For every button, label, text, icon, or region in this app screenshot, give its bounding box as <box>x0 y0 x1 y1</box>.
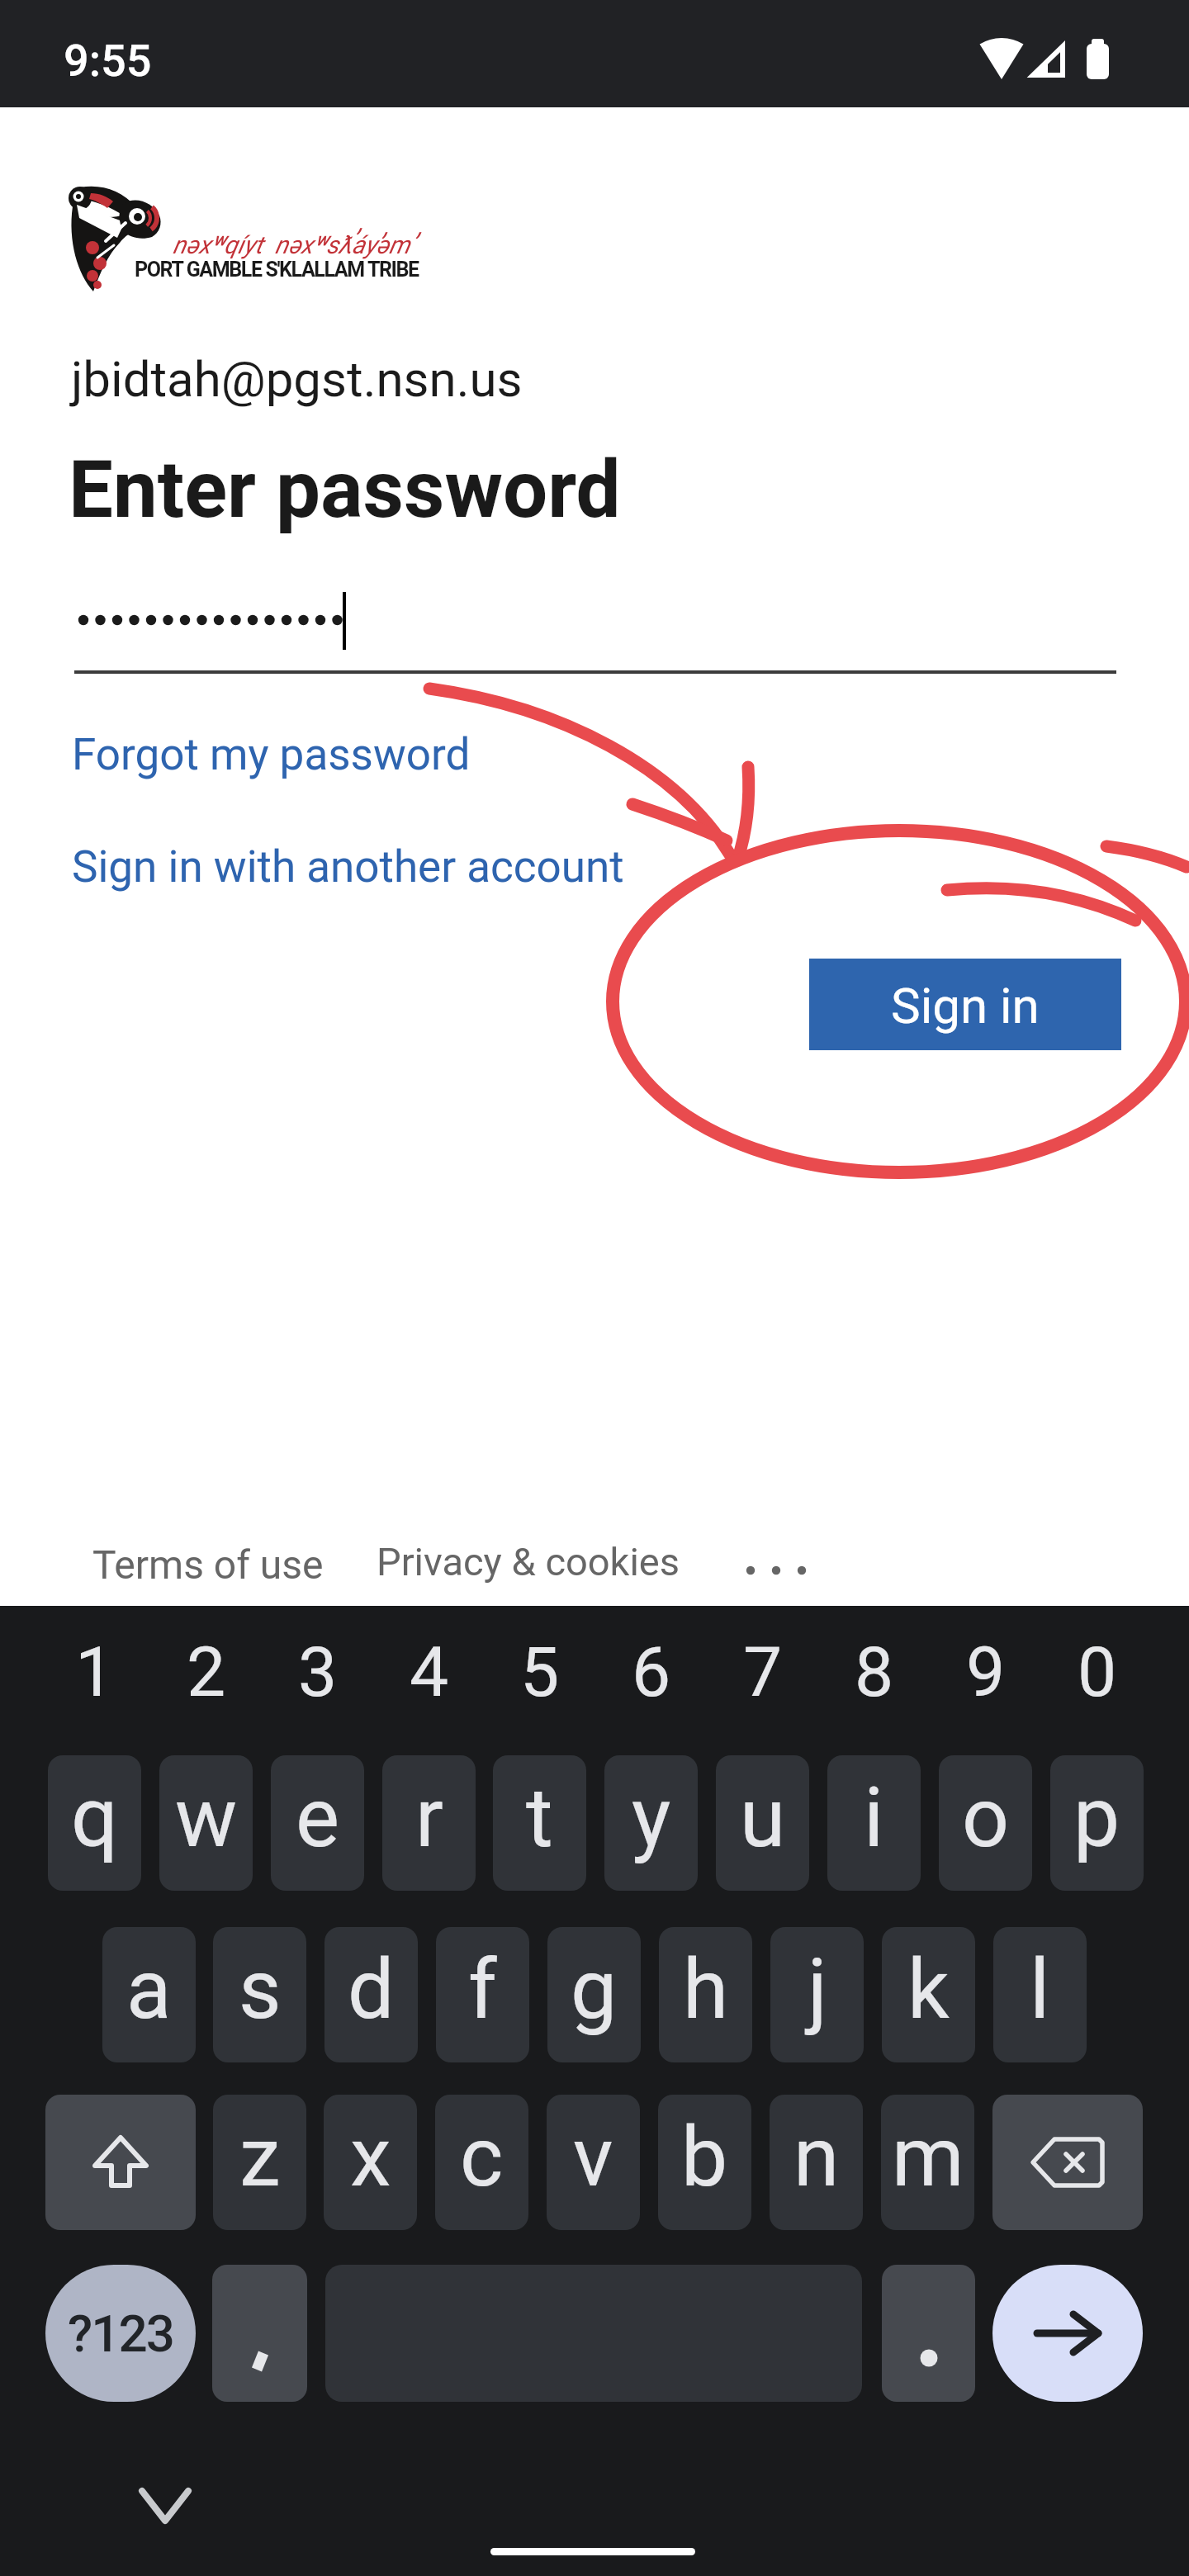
button[interactable] <box>132 2483 198 2532</box>
staticText: 8 <box>855 1631 894 1712</box>
staticText: 2 <box>187 1631 226 1712</box>
staticText: o <box>962 1769 1010 1866</box>
staticText: 6 <box>632 1631 671 1712</box>
staticText: v <box>573 2109 613 2205</box>
staticText: 7 <box>743 1631 783 1712</box>
staticText: p <box>1073 1769 1120 1866</box>
button[interactable] <box>992 2265 1143 2402</box>
staticText: h <box>683 1941 729 2038</box>
button[interactable] <box>739 1556 822 1584</box>
staticText: n <box>793 2109 840 2205</box>
button[interactable]: v <box>547 2095 640 2230</box>
button[interactable]: 7 <box>717 1631 809 1713</box>
button[interactable]: i <box>827 1755 921 1891</box>
button[interactable]: k <box>882 1927 975 2062</box>
button[interactable]: s <box>213 1927 306 2062</box>
button[interactable]: e <box>271 1755 364 1891</box>
staticText: f <box>468 1941 497 2038</box>
button[interactable]: w <box>159 1755 253 1891</box>
staticText: e <box>296 1769 340 1866</box>
staticText: c <box>460 2109 504 2205</box>
button[interactable]: Forgot my password <box>72 729 471 780</box>
staticText: Sign in <box>891 977 1040 1035</box>
staticText: b <box>681 2109 728 2205</box>
button[interactable]: r <box>382 1755 476 1891</box>
button[interactable]: Sign in <box>809 959 1121 1050</box>
staticText: t <box>526 1769 553 1866</box>
button[interactable]: Privacy & cookies <box>377 1539 680 1584</box>
staticText: 3 <box>298 1631 338 1712</box>
button[interactable]: f <box>436 1927 529 2062</box>
button[interactable]: u <box>716 1755 809 1891</box>
button[interactable]: b <box>658 2095 751 2230</box>
staticText: r <box>415 1769 443 1866</box>
staticText: 0 <box>1078 1631 1117 1712</box>
button[interactable]: 8 <box>828 1631 921 1713</box>
button[interactable]: t <box>493 1755 586 1891</box>
staticText: y <box>632 1769 671 1866</box>
button[interactable] <box>212 2265 307 2402</box>
button[interactable]: d <box>324 1927 418 2062</box>
staticText: u <box>740 1769 786 1866</box>
button[interactable]: 4 <box>383 1631 476 1713</box>
staticText: j <box>808 1941 827 2038</box>
staticText: 9 <box>966 1631 1006 1712</box>
button[interactable]: h <box>659 1927 752 2062</box>
button[interactable]: 1 <box>49 1631 141 1713</box>
staticText: l <box>1030 1941 1050 2038</box>
staticText: jbidtah@pgst.nsn.us <box>71 350 523 408</box>
button[interactable]: Terms of use <box>92 1541 324 1588</box>
button[interactable]: 0 <box>1051 1631 1144 1713</box>
staticText: d <box>348 1941 395 2038</box>
button[interactable] <box>992 2095 1143 2230</box>
button[interactable] <box>882 2265 975 2402</box>
staticText: m <box>892 2109 964 2205</box>
staticText: k <box>907 1941 950 2038</box>
staticText: PORT GAMBLE S'KLALLAM TRIBE <box>135 258 419 282</box>
button[interactable]: q <box>48 1755 141 1891</box>
button[interactable]: 9 <box>940 1631 1032 1713</box>
button[interactable]: a <box>102 1927 196 2062</box>
staticText: x <box>350 2109 391 2205</box>
button[interactable]: z <box>213 2095 306 2230</box>
button[interactable]: j <box>770 1927 864 2062</box>
staticText: z <box>239 2109 281 2205</box>
button[interactable]: ?123 <box>45 2265 196 2402</box>
staticText: a <box>126 1941 172 2038</box>
staticText: 5 <box>520 1631 560 1712</box>
button[interactable]: y <box>604 1755 698 1891</box>
staticText: ?123 <box>68 2304 173 2364</box>
staticText: 9:55 <box>64 35 152 87</box>
staticText: g <box>571 1941 618 2038</box>
staticText: s <box>239 1941 282 2038</box>
button[interactable]: 3 <box>272 1631 364 1713</box>
button[interactable]: c <box>435 2095 528 2230</box>
staticText: Enter password <box>69 443 621 537</box>
button[interactable]: m <box>881 2095 974 2230</box>
button[interactable]: Sign in with another account <box>72 841 624 893</box>
button[interactable]: n <box>770 2095 863 2230</box>
button[interactable]: 2 <box>160 1631 253 1713</box>
button[interactable]: 6 <box>605 1631 698 1713</box>
button[interactable] <box>45 2095 196 2230</box>
button[interactable]: o <box>939 1755 1032 1891</box>
staticText: nəxʷqíyt nəxʷsƛ̕áy̕əm̕ <box>173 230 410 259</box>
staticText: 4 <box>410 1631 449 1712</box>
button[interactable]: g <box>547 1927 641 2062</box>
staticText: i <box>864 1769 884 1866</box>
button[interactable]: p <box>1050 1755 1144 1891</box>
button[interactable]: 5 <box>494 1631 586 1713</box>
button[interactable]: x <box>324 2095 417 2230</box>
staticText: 1 <box>75 1631 115 1712</box>
staticText: w <box>175 1769 238 1866</box>
staticText: q <box>71 1769 118 1866</box>
button[interactable]: l <box>993 1927 1087 2062</box>
